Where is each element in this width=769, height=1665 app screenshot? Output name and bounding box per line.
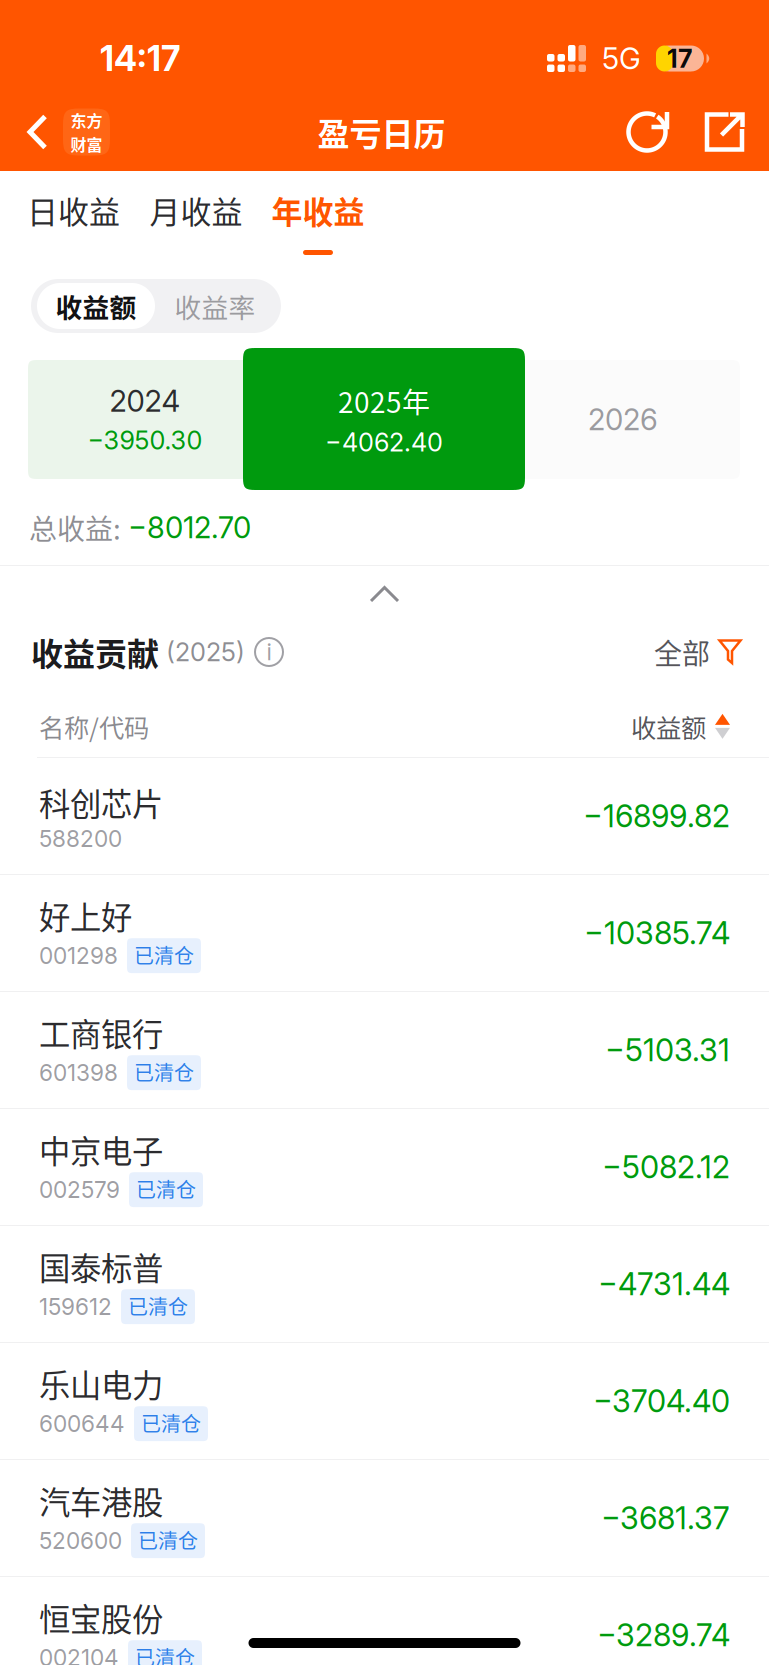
staticText: −3950.30 (87, 425, 202, 456)
staticText: 002104 (39, 1644, 119, 1665)
button[interactable]: 汽车港股 (0, 1460, 769, 1577)
staticText: 中京电子 (39, 1127, 163, 1172)
staticText: −4062.40 (325, 427, 443, 458)
staticText: 159612 (39, 1293, 112, 1320)
staticText: 盈亏日历 (317, 109, 445, 155)
staticText: 001298 (39, 942, 118, 969)
staticText: 收益额 (631, 708, 706, 745)
staticText: 财富 (70, 132, 102, 156)
staticText: −3704.40 (593, 1382, 730, 1419)
staticText: 2026 (588, 402, 658, 437)
button[interactable]: 东方 (0, 93, 122, 171)
staticText: 年收益 (271, 188, 364, 232)
button[interactable]: 乐山电力 (0, 1343, 769, 1460)
staticText: i (266, 638, 271, 666)
button[interactable]: 好上好 (0, 875, 769, 992)
staticText: −16899.82 (583, 797, 730, 834)
staticText: 总收益: (29, 507, 121, 548)
button[interactable]: 月收益 (135, 182, 257, 238)
button[interactable]: 年收益 (257, 182, 379, 261)
staticText: 东方 (70, 108, 102, 131)
button[interactable]: Collapse (0, 566, 769, 622)
button[interactable]: 2025年 (243, 348, 525, 490)
staticText: −8012.70 (128, 510, 251, 545)
button[interactable]: Share (692, 93, 757, 171)
staticText: 名称/代码 (39, 708, 149, 745)
button[interactable]: 科创芯片 (0, 758, 769, 875)
staticText: 已清仓 (138, 1525, 198, 1554)
button[interactable]: 2024 (28, 360, 262, 479)
staticText: 520600 (39, 1527, 122, 1554)
staticText: −4731.44 (598, 1265, 730, 1302)
staticText: −10385.74 (584, 914, 730, 951)
staticText: 日收益 (27, 188, 120, 232)
staticText: 恒宝股份 (39, 1595, 163, 1640)
staticText: 2024 (109, 383, 180, 419)
staticText: 月收益 (149, 188, 242, 232)
button[interactable]: Refresh (605, 93, 692, 171)
button[interactable]: 工商银行 (0, 992, 769, 1109)
staticText: 588200 (39, 825, 122, 852)
staticText: −3681.37 (601, 1499, 730, 1536)
button[interactable]: 中京电子 (0, 1109, 769, 1226)
staticText: 已清仓 (135, 1642, 195, 1665)
staticText: 已清仓 (134, 1057, 194, 1086)
staticText: 乐山电力 (39, 1361, 163, 1406)
button[interactable]: 恒宝股份 (0, 1577, 769, 1665)
staticText: 600644 (39, 1410, 125, 1437)
staticText: 已清仓 (141, 1408, 201, 1437)
staticText: 002579 (39, 1176, 120, 1203)
staticText: 收益贡献 (31, 629, 159, 675)
staticText: 14:17 (100, 37, 180, 79)
button[interactable]: 收益额 (37, 283, 155, 329)
staticText: 好上好 (39, 893, 132, 938)
staticText: 汽车港股 (39, 1478, 163, 1523)
button[interactable]: 全部 (654, 632, 742, 672)
button[interactable]: 2026 (506, 360, 740, 479)
button[interactable]: 收益率 (155, 283, 275, 329)
button[interactable]: 国泰标普 (0, 1226, 769, 1343)
staticText: (2025) (166, 637, 245, 667)
staticText: 已清仓 (128, 1291, 188, 1320)
button[interactable]: 日收益 (12, 182, 135, 238)
staticText: −5082.12 (602, 1148, 730, 1185)
staticText: 已清仓 (134, 940, 194, 969)
staticText: 科创芯片 (39, 780, 163, 825)
staticText: 收益额 (55, 287, 136, 325)
staticText: 国泰标普 (39, 1244, 163, 1289)
staticText: −5103.31 (605, 1031, 730, 1068)
staticText: 全部 (654, 632, 710, 672)
staticText: 工商银行 (39, 1010, 163, 1055)
staticText: 17 (667, 43, 693, 74)
staticText: 2025年 (338, 380, 430, 421)
staticText: −3289.74 (597, 1616, 730, 1653)
staticText: 5G (602, 41, 641, 76)
staticText: 已清仓 (136, 1174, 196, 1203)
staticText: 收益率 (174, 287, 255, 325)
staticText: 601398 (39, 1059, 118, 1086)
